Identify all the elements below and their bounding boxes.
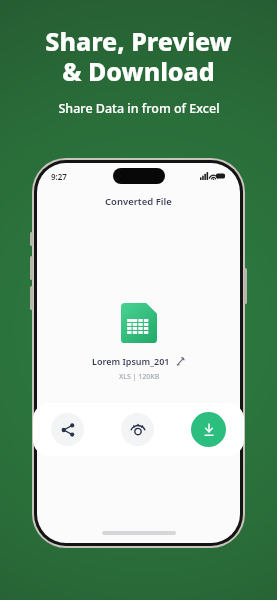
button[interactable]: Rename file: [175, 356, 186, 367]
staticText: XLS | 120KB: [119, 372, 160, 382]
button[interactable]: Preview: [121, 413, 154, 446]
staticText: Converted File: [105, 195, 172, 208]
staticText: 9:27: [51, 171, 67, 182]
staticText: Lorem Ipsum_201: [92, 355, 170, 367]
button[interactable]: Share: [51, 413, 84, 446]
staticText: Share, Preview & Download: [45, 24, 232, 88]
staticText: Share Data in from of Excel: [58, 100, 220, 117]
button[interactable]: Download: [191, 412, 226, 447]
